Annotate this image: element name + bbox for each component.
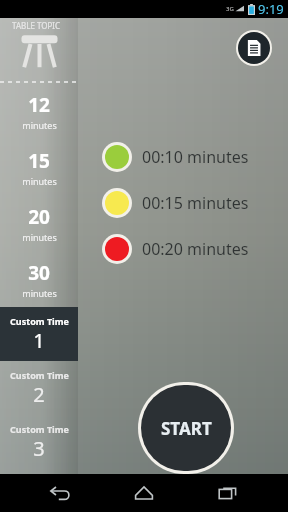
button[interactable]: 15 (0, 139, 78, 195)
button[interactable]: TABLE TOPIC (0, 18, 78, 81)
staticText: 1 (33, 327, 45, 354)
staticText: Custom Time (10, 423, 69, 435)
staticText: minutes (22, 231, 57, 243)
staticText: 3 (33, 435, 45, 462)
staticText: minutes (22, 119, 57, 131)
button[interactable]: 00:10 minutes (102, 142, 249, 172)
button[interactable]: Home (120, 474, 168, 512)
button[interactable]: START (141, 385, 231, 471)
staticText: 15 (28, 148, 50, 174)
button[interactable]: 00:15 minutes (102, 188, 249, 218)
staticText: TABLE TOPIC (12, 20, 61, 31)
staticText: 00:10 minutes (142, 146, 249, 168)
button[interactable]: Custom Time (0, 415, 78, 469)
staticText: 3G (226, 5, 234, 13)
button[interactable]: Custom Time (0, 307, 78, 361)
staticText: 2 (33, 381, 45, 408)
staticText: 20 (28, 204, 50, 230)
staticText: minutes (22, 175, 57, 187)
button[interactable]: Custom Time (0, 361, 78, 415)
staticText: START (161, 417, 212, 440)
button[interactable]: Topics list (238, 32, 270, 64)
staticText: Custom Time (10, 315, 69, 327)
staticText: 12 (28, 92, 50, 118)
button[interactable]: 20 (0, 195, 78, 251)
staticText: Custom Time (10, 369, 69, 381)
button[interactable]: 00:20 minutes (102, 234, 249, 264)
button[interactable]: Back (36, 474, 84, 512)
button[interactable]: 12 (0, 83, 78, 139)
staticText: 9:19 (258, 0, 284, 18)
staticText: 30 (28, 260, 50, 286)
staticText: 00:20 minutes (142, 238, 249, 260)
staticText: minutes (22, 287, 57, 299)
button[interactable]: 30 (0, 251, 78, 307)
staticText: 00:15 minutes (142, 192, 249, 214)
button[interactable]: Recents (204, 474, 252, 512)
